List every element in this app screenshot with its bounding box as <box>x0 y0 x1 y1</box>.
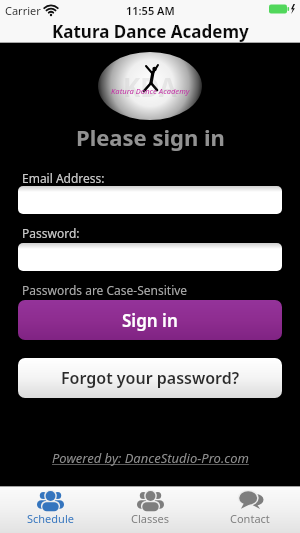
staticText: Sign in <box>122 309 178 332</box>
staticText: Contact <box>230 511 270 526</box>
staticText: KDA <box>123 69 177 104</box>
staticText: Passwords are Case-Sensitive <box>22 282 188 298</box>
staticText: Classes <box>131 511 169 526</box>
button[interactable]: Contact <box>200 486 300 533</box>
button[interactable]: Powered by: DanceStudio-Pro.com <box>52 449 249 467</box>
staticText: Password: <box>22 225 80 241</box>
button[interactable] <box>18 243 282 271</box>
staticText: Carrier <box>5 3 41 18</box>
button[interactable] <box>18 186 282 214</box>
button[interactable]: Classes <box>100 486 200 533</box>
staticText: Katura Dance Academy <box>52 20 249 43</box>
button[interactable]: Sign in <box>18 300 282 340</box>
staticText: Please sign in <box>76 122 225 152</box>
button[interactable]: Schedule <box>0 486 100 533</box>
staticText: 11:55 AM <box>126 3 175 18</box>
staticText: Schedule <box>27 511 74 526</box>
staticText: Forgot your password? <box>61 367 240 389</box>
staticText: Katura Dance Academy <box>111 86 190 96</box>
staticText: Email Address: <box>22 170 105 186</box>
button[interactable]: Forgot your password? <box>18 358 282 398</box>
